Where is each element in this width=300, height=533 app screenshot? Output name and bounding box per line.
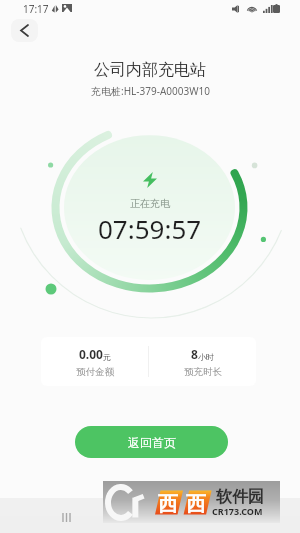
button[interactable]: Back [11,19,38,42]
button[interactable]: Recents [61,513,72,522]
staticText: 西 [186,492,206,517]
staticText: 元 [103,352,111,362]
staticText: 正在充电 [130,197,170,210]
staticText: 17:17 [23,2,49,16]
staticText: 公司内部充电站 [94,60,206,80]
staticText: 小时 [198,352,214,362]
staticText: 07:59:57 [98,211,202,246]
staticText: 0.00 [79,346,103,362]
staticText: 充电桩:HL-379-A0003W10 [91,84,210,98]
staticText: 8 [191,346,198,362]
staticText: 返回首页 [128,435,176,450]
staticText: 软件园 [216,487,264,507]
button[interactable]: 返回首页 [75,426,228,458]
staticText: 西 [158,492,178,517]
staticText: CR173.COM [212,505,263,517]
staticText: 预充时长 [184,366,222,378]
button[interactable]: 8 [149,337,256,386]
staticText: 预付金额 [76,366,114,378]
button[interactable]: 0.00 [41,337,148,386]
